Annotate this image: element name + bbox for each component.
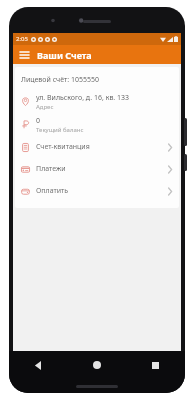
button[interactable]: Home [67,353,126,377]
staticText: Лицевой счёт: 1055550 [21,75,99,85]
staticText: Адрес [36,103,54,111]
staticText: Оплатить [36,186,161,196]
staticText: Счет-квитанция [36,142,161,152]
button[interactable]: Оплатить [15,180,179,202]
staticText: Платежи [36,164,161,174]
staticText: 0 [36,116,41,126]
button[interactable]: Счет-квитанция [15,136,179,158]
staticText: Ваши Счета [37,49,92,61]
button[interactable]: Back [9,353,67,377]
button[interactable]: ул. Вильского, д. 16, кв. 133 [15,90,179,113]
staticText: Текущий баланс [36,126,84,134]
staticText: 2:05 [16,35,28,43]
button[interactable]: Open navigation menu [18,48,31,61]
button[interactable]: Recent apps [126,353,185,377]
staticText: ул. Вильского, д. 16, кв. 133 [36,93,130,103]
button[interactable]: Платежи [15,158,179,180]
button[interactable]: 0 [15,113,179,136]
